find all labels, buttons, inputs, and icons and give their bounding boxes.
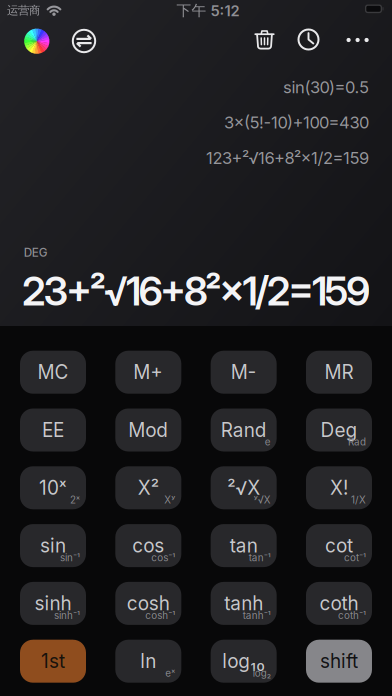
staticText: Xʸ — [164, 494, 175, 506]
staticText: cot⁻¹ — [344, 552, 366, 564]
button[interactable]: More — [343, 29, 373, 51]
staticText: Mod — [128, 418, 168, 441]
button[interactable]: 123+²√16+8²×1/2=159 — [206, 140, 369, 176]
staticText: ln — [140, 650, 156, 673]
button[interactable]: sin(30)=0.5 — [283, 69, 369, 105]
button[interactable]: sin — [20, 524, 86, 567]
staticText: sinh⁻¹ — [54, 609, 80, 621]
staticText: sin⁻¹ — [60, 552, 80, 564]
staticText: cot — [325, 534, 353, 557]
button[interactable]: 1st — [20, 640, 86, 683]
button[interactable]: M+ — [115, 351, 181, 394]
staticText: sinh — [34, 592, 71, 615]
staticText: log₁₀ — [222, 650, 265, 673]
staticText: 23+²√16+8²×1/2=159 — [22, 267, 370, 315]
button[interactable]: cosh — [115, 582, 181, 625]
staticText: DEG — [24, 245, 48, 260]
staticText: 运营商 — [7, 3, 40, 18]
staticText: MR — [324, 361, 353, 384]
staticText: 3×(5!-10)+100=430 — [224, 113, 369, 133]
button[interactable]: MR — [306, 351, 372, 394]
button[interactable]: MC — [20, 351, 86, 394]
button[interactable]: EE — [20, 408, 86, 451]
staticText: MC — [37, 361, 68, 384]
staticText: log₂ — [253, 667, 271, 679]
button[interactable]: ln — [115, 640, 181, 683]
staticText: 1/X — [351, 494, 366, 506]
button[interactable]: X! — [306, 466, 372, 509]
button[interactable]: cot — [306, 524, 372, 567]
button[interactable]: X² — [115, 466, 181, 509]
staticText: 10ˣ — [39, 476, 67, 499]
button[interactable]: ²√X — [211, 466, 277, 509]
button[interactable]: Theme color — [24, 29, 49, 54]
staticText: ʸ√X — [254, 494, 271, 506]
staticText: cos — [132, 534, 164, 557]
staticText: X! — [330, 476, 348, 499]
staticText: coth⁻¹ — [338, 609, 366, 621]
button[interactable]: Clear history — [254, 30, 274, 50]
button[interactable]: Swap — [71, 28, 97, 54]
staticText: e — [265, 436, 271, 448]
staticText: sin — [40, 534, 66, 557]
button[interactable]: tan — [211, 524, 277, 567]
button[interactable]: cos — [115, 524, 181, 567]
staticText: X² — [138, 476, 159, 499]
staticText: Rad — [348, 436, 366, 448]
staticText: 下午 5:12 — [176, 1, 239, 20]
staticText: 2ˣ — [70, 494, 80, 506]
button[interactable]: Mod — [115, 408, 181, 451]
staticText: tanh⁻¹ — [243, 609, 271, 621]
button[interactable]: History — [297, 28, 319, 50]
staticText: eˣ — [165, 667, 175, 679]
staticText: coth — [319, 592, 358, 615]
button[interactable]: log₁₀ — [211, 640, 277, 683]
staticText: 1st — [41, 650, 65, 673]
staticText: Rand — [221, 418, 267, 441]
button[interactable]: coth — [306, 582, 372, 625]
staticText: tan — [230, 534, 258, 557]
staticText: 123+²√16+8²×1/2=159 — [206, 148, 369, 168]
staticText: ²√X — [227, 476, 260, 499]
staticText: EE — [42, 418, 64, 441]
button[interactable]: Rand — [211, 408, 277, 451]
button[interactable]: shift — [306, 640, 372, 683]
staticText: sin(30)=0.5 — [283, 77, 369, 97]
staticText: tan⁻¹ — [249, 552, 271, 564]
staticText: cosh — [127, 592, 170, 615]
staticText: Deg — [320, 418, 357, 441]
staticText: cos⁻¹ — [151, 552, 175, 564]
button[interactable]: sinh — [20, 582, 86, 625]
staticText: tanh — [224, 592, 263, 615]
button[interactable]: tanh — [211, 582, 277, 625]
button[interactable]: Deg — [306, 408, 372, 451]
button[interactable]: 10ˣ — [20, 466, 86, 509]
staticText: cosh⁻¹ — [145, 609, 175, 621]
staticText: M- — [231, 361, 257, 384]
staticText: M+ — [133, 361, 163, 384]
button[interactable]: 3×(5!-10)+100=430 — [224, 105, 369, 140]
button[interactable]: M- — [211, 351, 277, 394]
staticText: shift — [320, 650, 358, 673]
